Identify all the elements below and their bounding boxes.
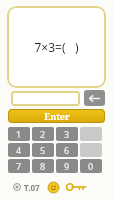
staticText: 1 [16, 128, 22, 140]
staticText: 7×3=( ) [34, 39, 79, 55]
button[interactable]: 3 [56, 127, 78, 141]
button[interactable]: Pause [13, 183, 21, 191]
button[interactable]: 6 [56, 143, 78, 157]
button[interactable]: 9 [56, 159, 78, 173]
button[interactable]: 1 [8, 127, 30, 141]
button[interactable]: 2 [32, 127, 54, 141]
staticText: 9 [64, 160, 70, 172]
staticText: T.07 [24, 182, 40, 193]
staticText: Enter [44, 110, 70, 122]
button[interactable] [11, 91, 80, 106]
staticText: 7 [16, 160, 22, 172]
button[interactable]: 7×3=( ) [7, 6, 106, 88]
staticText: 8 [40, 160, 46, 172]
button[interactable]: Backspace [84, 90, 105, 106]
staticText: 0 [88, 160, 94, 172]
button[interactable]: 8 [32, 159, 54, 173]
button[interactable]: 0 [80, 159, 102, 173]
staticText: 5 [40, 144, 46, 156]
button[interactable]: 4 [8, 143, 30, 157]
staticText: 4 [16, 144, 22, 156]
staticText: 6 [64, 144, 70, 156]
button[interactable]: Key [67, 182, 87, 192]
button[interactable]: 5 [32, 143, 54, 157]
button[interactable]: Coins [48, 182, 59, 193]
button[interactable]: 7 [8, 159, 30, 173]
staticText: 3 [64, 128, 70, 140]
staticText: 2 [40, 128, 46, 140]
button[interactable]: Enter [8, 109, 105, 123]
